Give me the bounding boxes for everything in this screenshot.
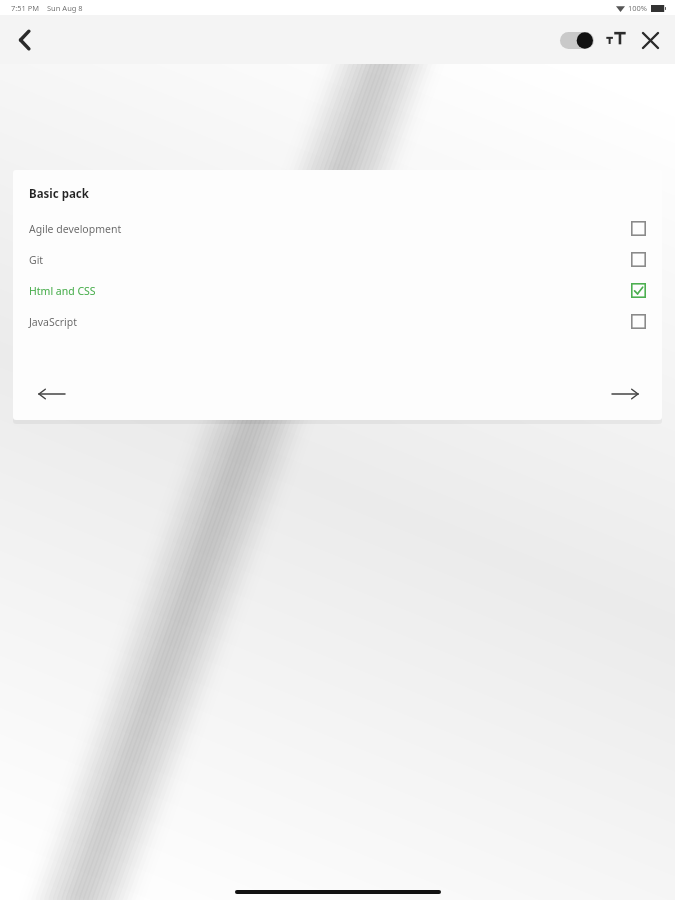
staticText: Html and CSS — [29, 284, 96, 298]
button[interactable]: Next — [608, 380, 642, 408]
staticText: 100% — [628, 3, 648, 13]
staticText: Basic pack — [29, 186, 89, 202]
button[interactable]: Back — [8, 23, 42, 57]
button[interactable]: JavaScript — [13, 306, 662, 337]
button[interactable]: Text size — [601, 25, 631, 55]
button[interactable]: Close — [635, 25, 665, 55]
button[interactable]: Agile development — [13, 213, 662, 244]
button[interactable]: Previous — [35, 380, 69, 408]
staticText: Agile development — [29, 222, 122, 236]
staticText: Sun Aug 8 — [47, 3, 83, 13]
staticText: JavaScript — [29, 315, 78, 329]
staticText: Git — [29, 253, 44, 267]
staticText: 7:51 PM — [11, 3, 40, 13]
button[interactable]: Html and CSS — [13, 275, 662, 306]
button[interactable]: Toggle dark mode — [559, 29, 595, 51]
button[interactable]: Git — [13, 244, 662, 275]
